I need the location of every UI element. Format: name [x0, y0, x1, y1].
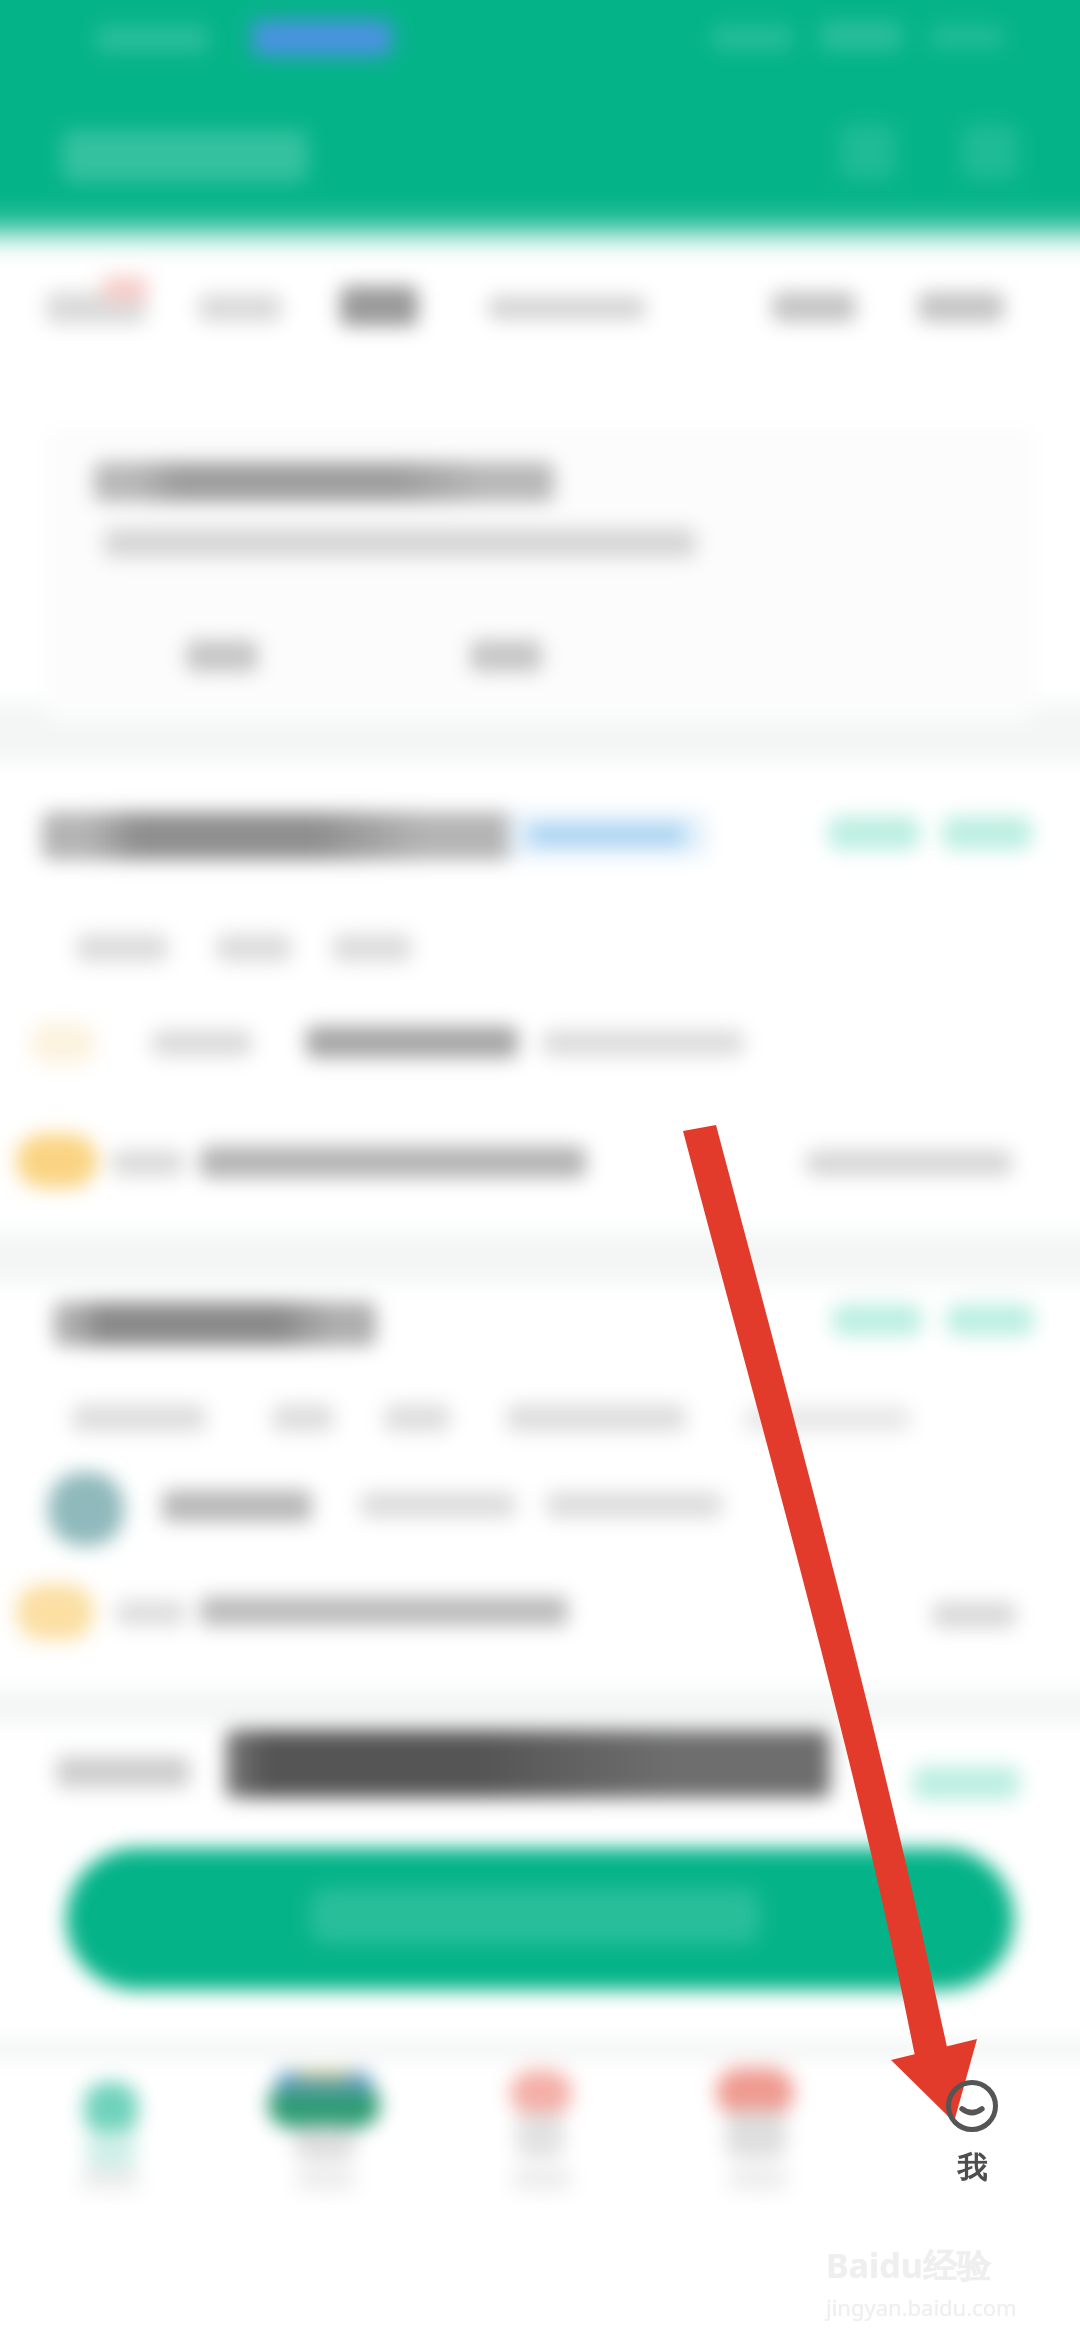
button[interactable]: 搜索 [828, 116, 904, 192]
button[interactable]: 订单卡片一 [0, 770, 1080, 1225]
button[interactable]: 推荐 [20, 262, 170, 326]
button[interactable]: 消息 [648, 2058, 864, 2218]
button[interactable]: 立即办理 [66, 1848, 1014, 1990]
button[interactable]: 消息 [948, 116, 1024, 192]
button[interactable]: 关注 [180, 262, 306, 326]
button[interactable]: 生活 [432, 2058, 648, 2218]
button[interactable]: 理财 [750, 262, 876, 326]
staticText: 我 [957, 2149, 987, 2187]
button[interactable]: 生活服务 [470, 262, 666, 326]
button[interactable]: 订单卡片二 [0, 1288, 1080, 1683]
staticText: jingyan.baidu.com [826, 2292, 1017, 2322]
staticText: Baidu经验 [826, 2242, 991, 2288]
button[interactable]: 首页 [0, 2058, 216, 2218]
button[interactable]: 钱包 [216, 2058, 432, 2218]
button[interactable]: 更多 [896, 262, 1024, 326]
button[interactable]: 我 [898, 2080, 1046, 2204]
button[interactable]: 资讯卡片 [0, 420, 1080, 700]
button[interactable]: 热门 [318, 262, 458, 326]
